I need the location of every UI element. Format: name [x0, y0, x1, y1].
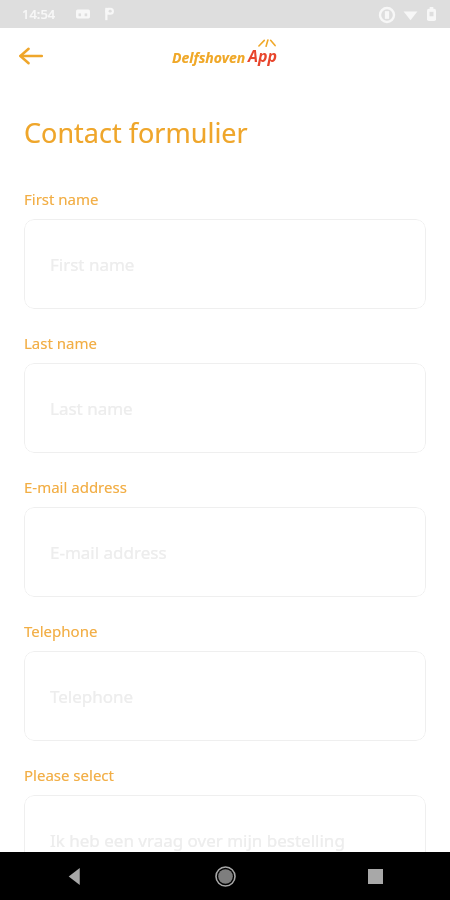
button[interactable]: Recent apps	[300, 852, 450, 900]
staticText: E-mail address	[50, 541, 167, 564]
staticText: Last name	[24, 333, 97, 353]
staticText: Ik heb een vraag over mijn bestelling	[50, 829, 345, 852]
staticText: First name	[24, 189, 99, 209]
staticText: First name	[50, 253, 135, 276]
staticText: Telephone	[24, 621, 98, 641]
staticText: Delfshoven	[172, 48, 246, 67]
button[interactable]: Back	[7, 32, 55, 80]
staticText: Telephone	[50, 685, 134, 708]
staticText: App	[248, 45, 278, 67]
staticText: E-mail address	[24, 477, 127, 497]
button[interactable]: Ik heb een vraag over mijn bestelling	[24, 795, 426, 885]
button[interactable]: E-mail address	[24, 507, 426, 597]
staticText: Contact formulier	[24, 114, 248, 151]
button[interactable]: Home	[150, 852, 300, 900]
staticText: Please select	[24, 765, 114, 785]
staticText: 14:54	[22, 5, 56, 23]
button[interactable]: Back	[0, 852, 150, 900]
staticText: Last name	[50, 397, 133, 420]
